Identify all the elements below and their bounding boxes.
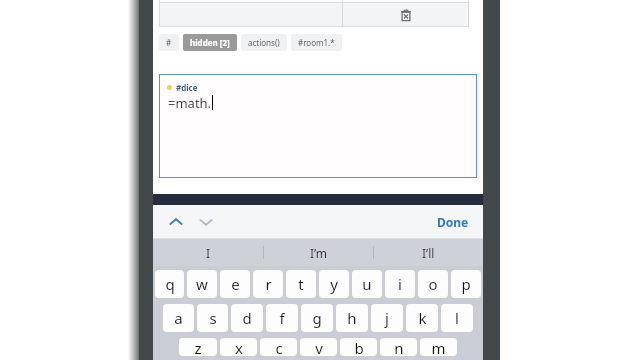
staticText: #room1.* [298, 37, 335, 48]
button[interactable]: f [266, 304, 298, 332]
button[interactable]: x [220, 338, 257, 356]
staticText: actions() [248, 37, 280, 48]
staticText: I’m [310, 245, 328, 261]
button[interactable]: r [253, 270, 283, 298]
button[interactable]: q [155, 270, 184, 298]
button[interactable]: h [336, 304, 368, 332]
button[interactable]: t [286, 270, 316, 298]
button[interactable]: k [406, 304, 438, 332]
button[interactable]: j [371, 304, 403, 332]
staticText: f [279, 308, 285, 328]
staticText: x [235, 338, 243, 356]
staticText: g [312, 308, 322, 328]
staticText: m [431, 338, 446, 356]
button[interactable]: v [300, 338, 337, 356]
staticText: j [385, 308, 389, 328]
button[interactable]: Delete [397, 6, 415, 24]
staticText: z [194, 338, 202, 356]
button[interactable]: i [385, 270, 415, 298]
button[interactable]: w [187, 270, 217, 298]
button[interactable]: d [231, 304, 263, 332]
staticText: l [455, 308, 459, 328]
staticText: t [298, 274, 304, 294]
staticText: v [315, 338, 323, 356]
staticText: n [394, 338, 404, 356]
button[interactable]: I’m [264, 239, 373, 266]
button[interactable]: hidden [2] [183, 34, 237, 51]
staticText: o [428, 274, 438, 294]
staticText: I [206, 245, 211, 261]
button[interactable]: #room1.* [291, 34, 342, 51]
button[interactable]: Done [423, 208, 483, 236]
button[interactable]: y [319, 270, 349, 298]
button[interactable]: I’ll [374, 239, 483, 266]
button[interactable]: a [163, 304, 194, 332]
button[interactable]: l [441, 304, 473, 332]
button[interactable]: I [153, 239, 263, 266]
button[interactable]: o [418, 270, 448, 298]
staticText: I’ll [422, 245, 435, 261]
staticText: k [418, 308, 427, 328]
button[interactable]: z [179, 338, 217, 356]
staticText: e [231, 274, 240, 294]
button[interactable]: #dice [159, 74, 477, 178]
staticText: u [362, 274, 372, 294]
staticText: a [174, 308, 183, 328]
staticText: #dice [176, 82, 198, 93]
staticText: p [461, 274, 471, 294]
staticText: hidden [2] [190, 37, 230, 48]
button[interactable]: m [420, 338, 457, 356]
button[interactable]: c [260, 338, 297, 356]
staticText: s [209, 308, 217, 328]
button[interactable]: # [159, 34, 179, 51]
button[interactable]: Next field [191, 207, 221, 237]
staticText: b [354, 338, 364, 356]
button[interactable]: b [340, 338, 377, 356]
button[interactable]: n [380, 338, 417, 356]
staticText: i [398, 274, 402, 294]
staticText: r [265, 274, 272, 294]
button[interactable]: u [352, 270, 382, 298]
staticText: =math. [168, 94, 212, 112]
staticText: y [330, 274, 338, 294]
staticText: d [242, 308, 252, 328]
button[interactable]: g [301, 304, 333, 332]
staticText: Done [437, 214, 469, 230]
staticText: w [196, 274, 208, 294]
staticText: h [347, 308, 357, 328]
button[interactable]: e [220, 270, 250, 298]
staticText: c [275, 338, 283, 356]
button[interactable]: s [197, 304, 228, 332]
button[interactable]: actions() [241, 34, 287, 51]
button[interactable]: Previous field [161, 207, 191, 237]
button[interactable]: p [451, 270, 481, 298]
staticText: # [166, 37, 172, 48]
staticText: q [165, 274, 175, 294]
